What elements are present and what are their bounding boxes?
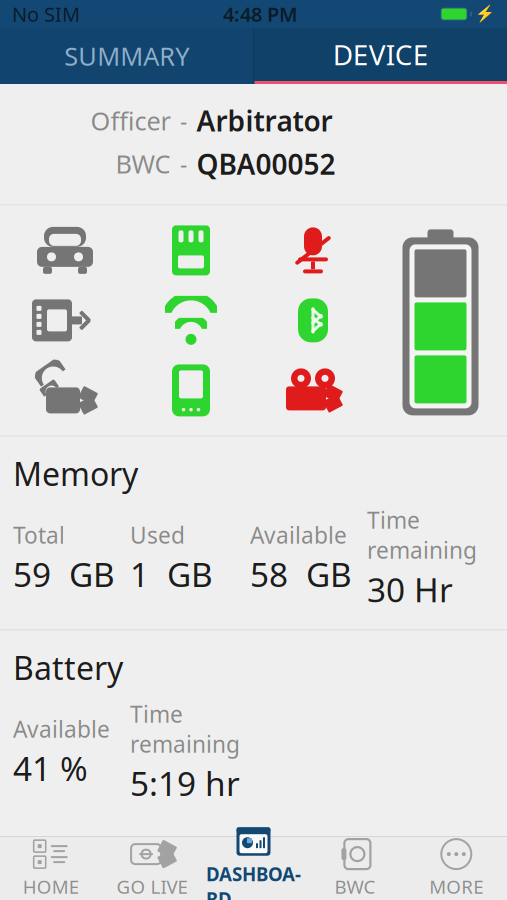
button[interactable]: GO LIVE — [101, 837, 203, 900]
staticText: 1 GB — [130, 552, 213, 596]
staticText: - — [180, 105, 187, 136]
button[interactable]: DEVICE — [254, 28, 507, 84]
staticText: MORE — [429, 874, 483, 899]
staticText: Available — [13, 714, 110, 744]
staticText: BWC — [334, 874, 375, 899]
staticText: 58 GB — [250, 552, 352, 596]
staticText: Time remaining — [130, 699, 240, 759]
staticText: SUMMARY — [64, 39, 189, 73]
button[interactable]: SUMMARY — [0, 28, 253, 84]
staticText: Battery — [13, 646, 123, 689]
staticText: Total — [13, 520, 65, 550]
staticText: DASHBOARD — [206, 862, 301, 900]
staticText: DEVICE — [333, 36, 429, 73]
staticText: Arbitrator — [196, 102, 332, 139]
staticText: ⚡ — [475, 5, 495, 23]
staticText: Available — [250, 520, 347, 550]
button[interactable]: MORE — [406, 837, 507, 900]
staticText: HOME — [23, 874, 79, 899]
button[interactable]: DASHBOARD — [203, 837, 304, 900]
staticText: Used — [130, 520, 185, 550]
staticText: BWC — [115, 147, 170, 181]
staticText: No SIM — [12, 1, 80, 27]
staticText: 30 Hr — [367, 567, 453, 611]
staticText: 41 % — [13, 746, 88, 790]
button[interactable]: BWC — [304, 837, 406, 900]
staticText: Officer — [90, 104, 170, 137]
staticText: GO LIVE — [117, 874, 188, 899]
staticText: 59 GB — [13, 552, 115, 596]
staticText: 5:19 hr — [130, 761, 240, 805]
staticText: 4:48 PM — [223, 1, 298, 27]
staticText: QBA00052 — [196, 145, 335, 182]
button[interactable]: HOME — [0, 837, 101, 900]
staticText: - — [180, 149, 187, 179]
staticText: Time remaining — [367, 505, 477, 565]
staticText: Memory — [13, 452, 138, 495]
